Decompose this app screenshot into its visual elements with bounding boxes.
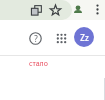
button[interactable]: More options: [90, 2, 105, 17]
button[interactable]: Google apps: [52, 29, 70, 47]
staticText: Zz: [80, 32, 89, 43]
staticText: стало: [29, 59, 48, 69]
button[interactable]: Tab groups: [28, 2, 44, 18]
button[interactable]: Bookmark: [47, 2, 63, 18]
button[interactable]: Google Account: [74, 27, 94, 47]
button[interactable]: Profile: [70, 2, 86, 18]
button[interactable]: Help: [26, 29, 44, 47]
staticText: ?: [34, 33, 38, 44]
